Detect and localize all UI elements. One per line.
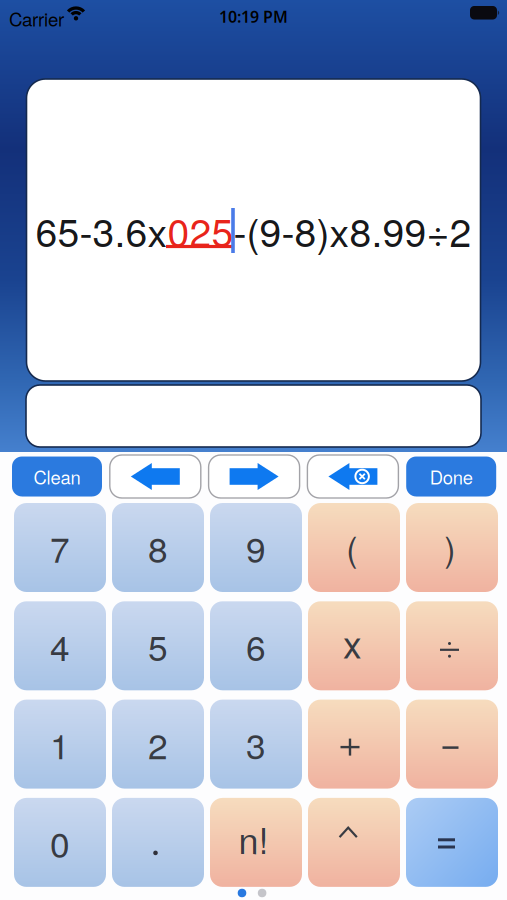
staticText: 2 xyxy=(148,719,168,769)
button[interactable]: 7 xyxy=(14,503,106,592)
button[interactable]: 2 xyxy=(112,700,204,789)
button[interactable]: 6 xyxy=(210,601,302,690)
button[interactable]: 1 xyxy=(14,700,106,789)
button[interactable] xyxy=(406,700,498,789)
button[interactable]: ) xyxy=(406,503,498,592)
staticText: Clean xyxy=(33,463,80,490)
staticText: ( xyxy=(346,523,357,571)
button[interactable] xyxy=(308,700,400,789)
button[interactable] xyxy=(406,798,498,887)
button[interactable]: x xyxy=(308,601,400,690)
staticText: 8 xyxy=(148,522,168,573)
button[interactable] xyxy=(209,455,300,498)
staticText: 4 xyxy=(50,620,70,671)
button[interactable] xyxy=(112,798,204,887)
button[interactable]: ( xyxy=(308,503,400,592)
staticText: x xyxy=(343,616,362,669)
button[interactable]: 3 xyxy=(210,700,302,789)
button[interactable]: 0 xyxy=(14,798,106,887)
button[interactable]: n! xyxy=(210,798,302,887)
button[interactable]: 8 xyxy=(112,503,204,592)
button[interactable]: Clean xyxy=(12,456,102,496)
staticText: Carrier xyxy=(9,5,64,32)
staticText: 6 xyxy=(246,620,266,671)
staticText: Done xyxy=(430,463,473,490)
staticText: 10:19 PM xyxy=(219,6,288,27)
staticText: n! xyxy=(238,813,268,864)
staticText: 65-3.6x xyxy=(35,202,167,258)
staticText: -(9-8)x8.99÷2 xyxy=(233,202,471,258)
button[interactable]: 4 xyxy=(14,601,106,690)
button[interactable] xyxy=(406,601,498,690)
staticText: 0 xyxy=(50,817,70,868)
button[interactable]: 5 xyxy=(112,601,204,690)
staticText: 5 xyxy=(148,620,168,671)
button[interactable]: Done xyxy=(406,456,496,496)
button[interactable] xyxy=(307,455,398,498)
staticText: 025 xyxy=(167,202,233,258)
button[interactable]: 9 xyxy=(210,503,302,592)
button[interactable] xyxy=(110,455,201,498)
staticText: 3 xyxy=(246,719,266,769)
staticText: 1 xyxy=(50,719,70,769)
staticText: ) xyxy=(444,523,455,571)
staticText: 9 xyxy=(246,522,266,573)
button[interactable] xyxy=(308,798,400,887)
staticText: 7 xyxy=(50,522,70,573)
